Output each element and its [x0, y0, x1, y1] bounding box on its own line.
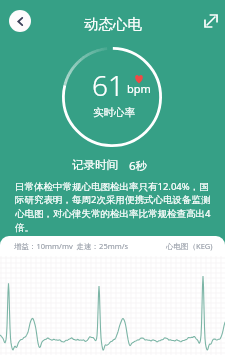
staticText: bpm	[127, 81, 151, 96]
button[interactable]: Fullscreen	[200, 10, 221, 31]
staticText: 心电图（KEG)	[166, 241, 213, 251]
staticText: 6秒	[129, 158, 148, 174]
staticText: 日常体检中常规心电图检出率只有12.04%，国际研究表明，每周2次采用便携式心电…	[15, 180, 218, 234]
staticText: 61	[92, 66, 124, 104]
staticText: 增益：10mm/mv 走速：25mm/s	[14, 241, 129, 251]
button[interactable]: Back	[9, 10, 31, 32]
staticText: 记录时间	[72, 158, 118, 172]
staticText: 实时心率	[93, 106, 135, 119]
staticText: 动态心电	[84, 15, 142, 33]
